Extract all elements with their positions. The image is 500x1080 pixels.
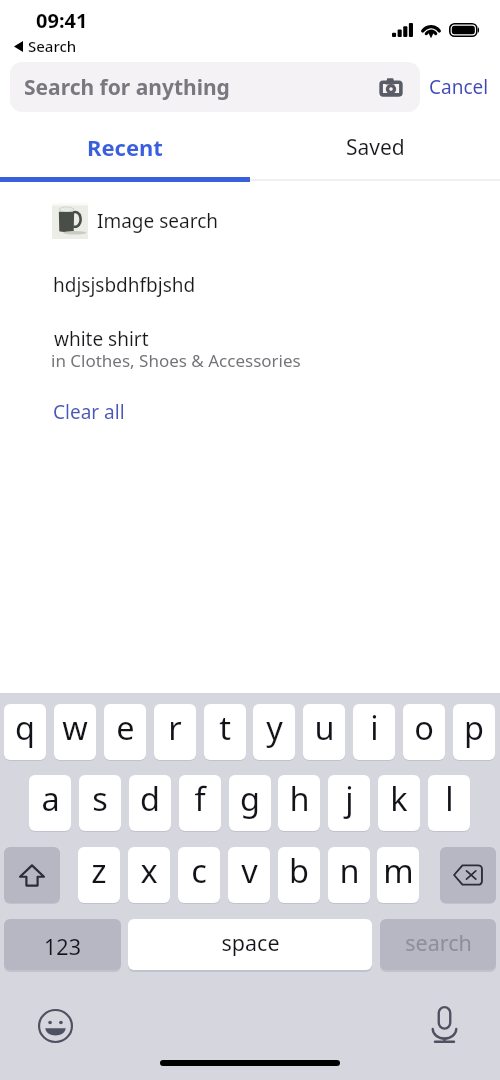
staticText: b bbox=[289, 848, 309, 892]
button[interactable]: Image search bbox=[0, 196, 500, 246]
button[interactable]: u bbox=[303, 704, 345, 760]
button[interactable]: j bbox=[328, 775, 370, 831]
staticText: k bbox=[390, 776, 408, 820]
staticText: e bbox=[116, 705, 135, 749]
staticText: Clear all bbox=[53, 399, 125, 425]
staticText: Cancel bbox=[429, 74, 489, 100]
button[interactable]: Dictation bbox=[422, 1002, 467, 1047]
staticText: Recent bbox=[87, 132, 163, 162]
button[interactable]: Cancel bbox=[429, 62, 489, 112]
staticText: hdjsjsbdhfbjshd bbox=[53, 272, 196, 298]
staticText: v bbox=[241, 848, 258, 892]
staticText: n bbox=[339, 848, 360, 892]
button[interactable]: k bbox=[378, 775, 420, 831]
button[interactable]: a bbox=[29, 775, 71, 831]
button[interactable]: d bbox=[129, 775, 171, 831]
button[interactable]: Search bbox=[14, 36, 77, 56]
button[interactable]: space bbox=[128, 919, 372, 970]
staticText: p bbox=[464, 705, 484, 749]
staticText: Search bbox=[28, 36, 77, 56]
button[interactable]: x bbox=[128, 847, 170, 903]
staticText: t bbox=[219, 705, 231, 749]
staticText: w bbox=[62, 705, 88, 749]
button[interactable]: Shift bbox=[4, 847, 60, 903]
button[interactable]: Clear all bbox=[40, 396, 138, 428]
button[interactable]: o bbox=[403, 704, 445, 760]
staticText: j bbox=[345, 776, 354, 820]
staticText: d bbox=[140, 776, 160, 820]
button[interactable]: f bbox=[179, 775, 221, 831]
staticText: search bbox=[405, 928, 472, 957]
button[interactable]: q bbox=[4, 704, 46, 760]
button[interactable]: m bbox=[377, 847, 419, 903]
staticText: z bbox=[91, 848, 107, 892]
button[interactable]: y bbox=[253, 704, 295, 760]
staticText: Image search bbox=[97, 208, 219, 234]
button[interactable]: t bbox=[204, 704, 246, 760]
button[interactable]: b bbox=[278, 847, 320, 903]
button[interactable]: i bbox=[353, 704, 395, 760]
staticText: 09:41 bbox=[36, 7, 88, 34]
staticText: h bbox=[289, 776, 310, 820]
button[interactable]: Emoji keyboard bbox=[32, 1003, 78, 1049]
staticText: r bbox=[168, 705, 182, 749]
button[interactable]: Recent bbox=[0, 120, 250, 173]
button[interactable]: white shirt bbox=[0, 320, 500, 374]
button[interactable]: v bbox=[228, 847, 270, 903]
button[interactable]: p bbox=[453, 704, 495, 760]
staticText: Saved bbox=[346, 133, 405, 162]
button[interactable]: Backspace bbox=[440, 847, 496, 903]
button[interactable]: hdjsjsbdhfbjshd bbox=[0, 264, 500, 300]
button[interactable]: Saved bbox=[250, 121, 500, 174]
staticText: s bbox=[92, 776, 108, 820]
staticText: space bbox=[221, 928, 280, 957]
button[interactable]: n bbox=[328, 847, 370, 903]
button[interactable]: 123 bbox=[4, 919, 121, 970]
button[interactable]: search bbox=[380, 919, 496, 970]
button[interactable]: c bbox=[178, 847, 220, 903]
staticText: l bbox=[445, 776, 454, 820]
staticText: f bbox=[194, 776, 206, 820]
staticText: a bbox=[41, 776, 60, 820]
staticText: i bbox=[370, 705, 379, 749]
button[interactable]: Search for anything bbox=[10, 62, 420, 112]
button[interactable]: r bbox=[154, 704, 196, 760]
button[interactable]: g bbox=[229, 775, 271, 831]
staticText: q bbox=[15, 705, 35, 749]
staticText: white shirt bbox=[54, 326, 149, 352]
staticText: o bbox=[414, 705, 434, 749]
button[interactable]: l bbox=[428, 775, 470, 831]
staticText: u bbox=[314, 705, 335, 749]
staticText: Search for anything bbox=[24, 73, 380, 102]
button[interactable]: z bbox=[78, 847, 120, 903]
staticText: 123 bbox=[44, 932, 81, 961]
staticText: x bbox=[140, 848, 158, 892]
button[interactable]: w bbox=[54, 704, 96, 760]
button[interactable]: e bbox=[104, 704, 146, 760]
button[interactable]: h bbox=[278, 775, 320, 831]
staticText: m bbox=[383, 848, 414, 892]
staticText: y bbox=[266, 705, 283, 749]
staticText: c bbox=[191, 848, 207, 892]
staticText: g bbox=[240, 776, 260, 820]
staticText: in Clothes, Shoes & Accessories bbox=[51, 349, 301, 372]
button[interactable]: s bbox=[79, 775, 121, 831]
